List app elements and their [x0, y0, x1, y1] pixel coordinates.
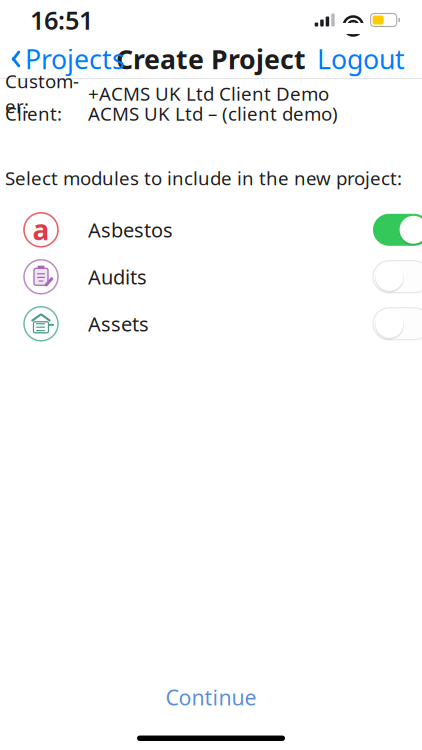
staticText: Asbestos [88, 216, 173, 243]
staticText: Select modules to include in the new pro… [5, 165, 402, 190]
staticText: Logout [317, 41, 405, 77]
button[interactable]: Audits [0, 253, 422, 300]
staticText: Customer: [5, 69, 79, 118]
staticText: Create Project [116, 41, 306, 77]
button[interactable]: Projects [0, 35, 125, 83]
staticText: +ACMS UK Ltd Client Demo [88, 81, 329, 106]
staticText: Audits [88, 263, 147, 290]
staticText: Client: [5, 101, 62, 126]
staticText: Projects [25, 41, 125, 77]
staticText: ACMS UK Ltd – (client demo) [88, 101, 338, 126]
staticText: Assets [88, 310, 149, 337]
button[interactable]: a [0, 206, 422, 253]
button[interactable]: Logout [317, 35, 422, 83]
staticText: 16:51 [30, 3, 93, 37]
button[interactable]: Continue [139, 673, 282, 721]
button[interactable]: Assets [0, 300, 422, 347]
staticText: Continue [165, 683, 256, 711]
staticText: a [32, 211, 49, 248]
